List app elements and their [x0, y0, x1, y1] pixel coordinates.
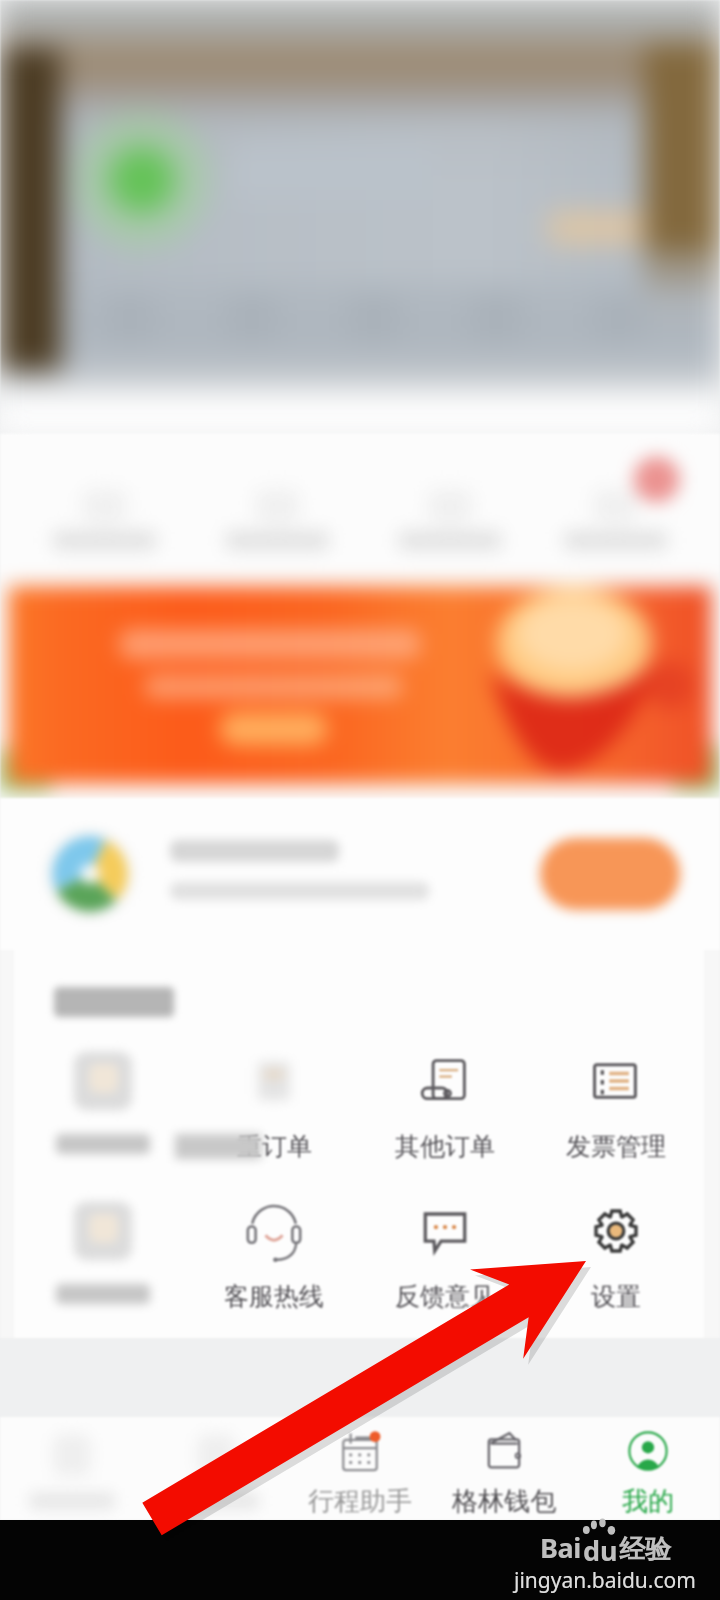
staticText: 重订单 — [237, 1131, 312, 1162]
button[interactable]: Tool — [17, 1047, 188, 1157]
staticText: 格林钱包 — [452, 1485, 556, 1518]
button[interactable]: Tab — [0, 1424, 144, 1513]
button[interactable]: 发票管理 — [530, 1047, 701, 1162]
button[interactable]: 我的 — [576, 1420, 720, 1518]
button[interactable]: 其他订单 — [359, 1047, 530, 1162]
staticText: 发票管理 — [566, 1131, 666, 1162]
button[interactable]: 反馈意见 — [359, 1197, 530, 1312]
staticText: 反馈意见 — [395, 1281, 495, 1312]
button[interactable]: 格林钱包 — [432, 1420, 576, 1518]
button[interactable]: Claim — [540, 838, 680, 910]
staticText: 其他订单 — [395, 1131, 495, 1162]
button[interactable]: 行程助手 — [288, 1420, 432, 1518]
staticText: du — [583, 1532, 618, 1566]
staticText: 经验 — [619, 1533, 671, 1566]
button[interactable]: 设置 — [530, 1197, 701, 1312]
button[interactable]: Tab — [144, 1424, 288, 1513]
staticText: 客服热线 — [224, 1281, 324, 1312]
staticText: 我的 — [622, 1485, 674, 1518]
staticText: 行程助手 — [308, 1485, 412, 1518]
button[interactable]: 重订单 — [188, 1047, 359, 1162]
button[interactable]: Tool — [17, 1197, 188, 1307]
button[interactable]: Claim — [0, 798, 720, 950]
button[interactable] — [0, 579, 720, 791]
staticText: jingyan.baidu.com — [514, 1566, 696, 1595]
button[interactable]: 客服热线 — [188, 1197, 359, 1312]
staticText: Bai — [540, 1529, 581, 1566]
staticText: 设置 — [591, 1281, 641, 1312]
